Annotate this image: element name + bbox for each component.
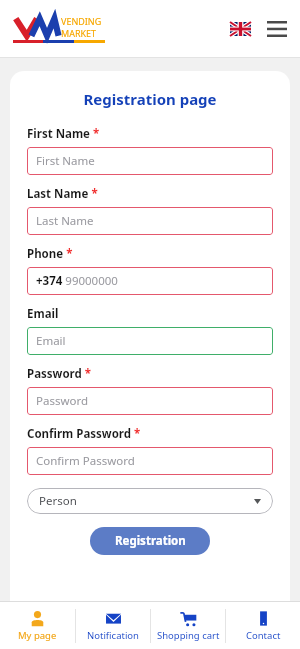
staticText: My page [18,629,57,642]
staticText: Confirm Password [36,453,135,469]
staticText: VENDING [61,15,102,27]
button[interactable]: +374 99000000 [27,267,273,295]
button[interactable]: Menu [267,21,287,37]
staticText: First Name * [27,126,100,142]
staticText: Notification [87,629,139,642]
button[interactable]: My page [0,602,75,649]
staticText: Password [36,393,89,409]
button[interactable]: Last Name [27,207,273,235]
staticText: Phone * [27,246,73,262]
staticText: Shopping cart [157,629,220,642]
button[interactable]: Contact [226,602,300,649]
staticText: Email [36,333,66,349]
staticText: Last Name * [27,186,98,202]
button[interactable]: Person [27,488,273,514]
button[interactable]: Notification [76,602,150,649]
staticText: +374 99000000 [36,273,118,289]
button[interactable]: Registration [90,527,210,555]
staticText: Password * [27,366,92,382]
staticText: MARKET [61,27,97,39]
button[interactable]: Password [27,387,273,415]
staticText: Person [39,493,77,509]
staticText: Registration page [27,89,273,109]
button[interactable]: Confirm Password [27,447,273,475]
button[interactable]: Shopping cart [151,602,225,649]
button[interactable]: Language English [230,22,251,36]
button[interactable]: Email [27,327,273,355]
staticText: First Name [36,153,95,169]
staticText: Last Name [36,213,94,229]
staticText: Registration [115,533,186,549]
staticText: Confirm Password * [27,426,141,442]
staticText: Contact [246,629,281,642]
button[interactable]: First Name [27,147,273,175]
staticText: Email [27,306,59,322]
